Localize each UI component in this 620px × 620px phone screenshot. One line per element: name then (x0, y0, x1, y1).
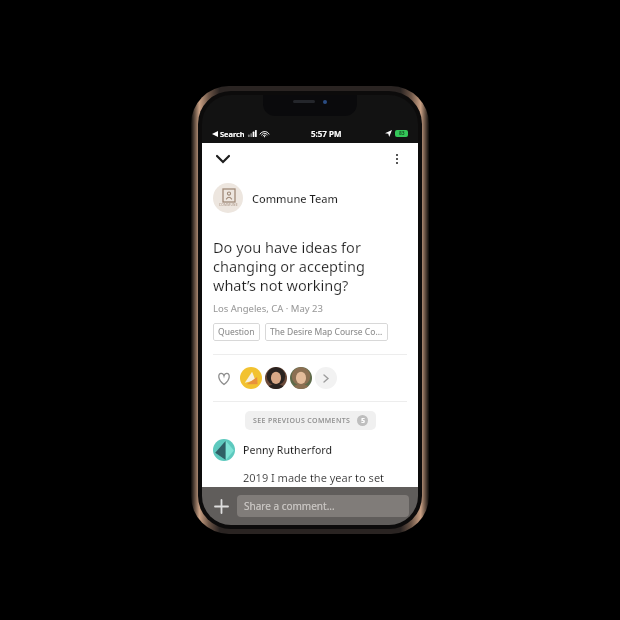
button[interactable]: Collapse (212, 148, 234, 170)
button[interactable]: The Desire Map Course Co... (265, 323, 388, 341)
staticText: Penny Rutherford (243, 443, 333, 457)
staticText: 5 (361, 416, 365, 425)
button[interactable]: More options (386, 148, 408, 170)
button[interactable]: Question (213, 323, 260, 341)
staticText: 2019 I made the year to set boundaries o… (243, 470, 407, 487)
staticText: Los Angeles, CA · May 23 (213, 302, 323, 315)
button[interactable]: Share a comment... (237, 495, 409, 517)
staticText: Search (220, 129, 245, 139)
staticText: Commune Team (252, 191, 338, 206)
staticText: COMMUNE (219, 203, 238, 207)
button[interactable]: Like (213, 367, 235, 389)
button[interactable]: Reactor 2 (265, 367, 287, 389)
button[interactable]: Reactor 3 (290, 367, 312, 389)
staticText: The Desire Map Course Co... (270, 326, 383, 338)
staticText: Share a comment... (244, 499, 335, 513)
staticText: Question (218, 326, 255, 338)
staticText: 5:57 PM (311, 128, 342, 139)
button[interactable]: SEE PREVIOUS COMMENTS (245, 411, 376, 430)
staticText: SEE PREVIOUS COMMENTS (253, 416, 351, 426)
staticText: 83 (399, 130, 405, 137)
button[interactable]: COMMUNE (213, 183, 407, 213)
button[interactable]: Reactor 1 (240, 367, 262, 389)
button[interactable]: Add attachment (211, 496, 231, 516)
button[interactable]: More reactions (315, 367, 337, 389)
button[interactable]: Penny Rutherford (213, 439, 407, 461)
staticText: Do you have ideas for changing or accept… (213, 237, 407, 295)
